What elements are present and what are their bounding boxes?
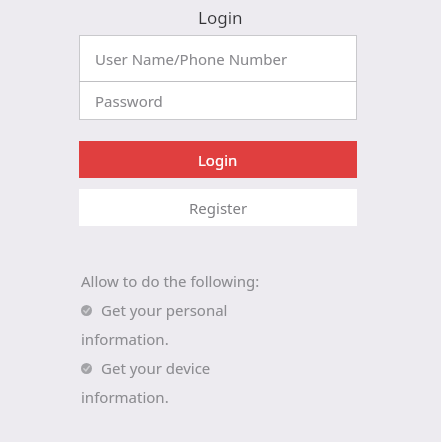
staticText: Login <box>198 6 243 29</box>
staticText: Allow to do the following: <box>81 271 260 291</box>
other: Granted <box>81 363 92 374</box>
button[interactable]: Password <box>80 82 356 119</box>
staticText: User Name/Phone Number <box>95 49 288 69</box>
button[interactable]: Login <box>79 141 357 178</box>
staticText: information. <box>81 387 169 407</box>
staticText: Get your device <box>101 358 211 378</box>
staticText: information. <box>81 329 169 349</box>
button[interactable]: Register <box>79 189 357 226</box>
staticText: Login <box>198 150 238 170</box>
other: Granted <box>81 305 92 316</box>
button[interactable]: User Name/Phone Number <box>80 36 356 81</box>
staticText: Password <box>95 91 163 111</box>
staticText: Get your personal <box>101 300 228 320</box>
staticText: Register <box>189 198 248 218</box>
